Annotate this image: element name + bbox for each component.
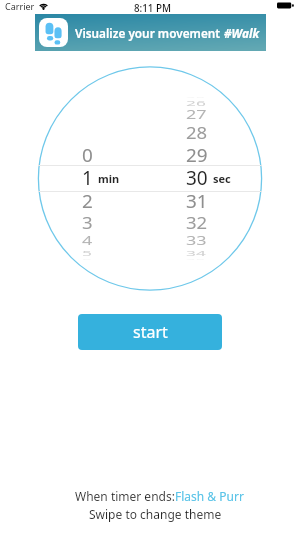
staticText: 27 [186, 107, 207, 123]
staticText: 28 [186, 122, 207, 144]
staticText: 3 [82, 212, 93, 234]
staticText: #Walk [224, 25, 260, 41]
staticText: 0 [82, 142, 93, 167]
staticText: 26 [186, 98, 206, 108]
staticText: Visualize your movement [75, 25, 224, 41]
button[interactable]: Visualize your movement [35, 14, 266, 51]
staticText: 1 [82, 165, 93, 191]
staticText: 31 [186, 188, 208, 213]
staticText: 5 [82, 248, 92, 258]
staticText: 30 [186, 165, 208, 191]
staticText: 33 [186, 233, 207, 249]
staticText: 32 [186, 212, 207, 234]
staticText: Swipe to change theme [89, 506, 222, 522]
staticText: start [133, 321, 168, 343]
staticText: sec [213, 171, 231, 186]
staticText: 25 [186, 95, 205, 98]
staticText: When timer ends: [75, 488, 175, 504]
staticText: min [98, 171, 120, 186]
button[interactable]: Flash & Purr [175, 488, 244, 504]
staticText: 8:11 PM [134, 2, 171, 15]
staticText: 4 [82, 233, 92, 249]
staticText: 6 [82, 257, 91, 260]
staticText: 29 [186, 142, 208, 167]
staticText: Carrier [5, 0, 35, 12]
staticText: 2 [82, 188, 93, 213]
button[interactable]: start [78, 314, 222, 350]
staticText: 34 [186, 248, 206, 258]
staticText: 35 [186, 257, 205, 260]
